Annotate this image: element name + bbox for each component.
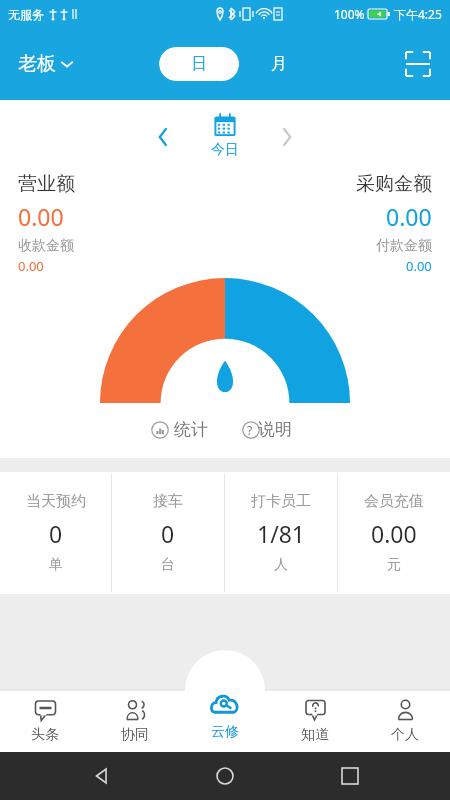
button[interactable]: 日 (159, 47, 239, 81)
button[interactable]: 打卡员工 (225, 472, 337, 594)
staticText: 个人 (391, 726, 419, 744)
staticText: 0 (49, 518, 63, 549)
button[interactable]: ? (236, 415, 306, 444)
staticText: 统计 (174, 419, 208, 440)
staticText: 采购金额 (356, 172, 432, 196)
staticText: 知道 (301, 726, 329, 744)
button[interactable]: 扫一扫 (400, 46, 436, 82)
staticText: 付款金额 (376, 237, 432, 255)
staticText: 日 (191, 54, 207, 74)
staticText: 元 (387, 556, 401, 574)
button[interactable]: 个人 (360, 690, 450, 752)
staticText: 打卡员工 (251, 492, 311, 511)
staticText: 当天预约 (26, 492, 86, 511)
staticText: 0.00 (18, 201, 64, 232)
staticText: 收款金额 (18, 237, 74, 255)
button[interactable]: 今日 (205, 114, 245, 159)
staticText: 单 (49, 556, 63, 574)
button[interactable]: 返回 (77, 752, 125, 800)
staticText: 0.00 (386, 201, 432, 232)
staticText: 0 (161, 518, 175, 549)
staticText: 100% (334, 6, 365, 22)
staticText: ? (247, 422, 253, 438)
button[interactable]: 统计 (145, 415, 214, 444)
staticText: 头条 (31, 726, 59, 744)
staticText: 无服务 (8, 7, 44, 22)
staticText: 台 (161, 556, 175, 574)
button[interactable]: 头条 (0, 690, 90, 752)
staticText: 接车 (153, 492, 183, 511)
staticText: 0.00 (406, 257, 432, 275)
staticText: 人 (274, 556, 288, 574)
staticText: 下午4:25 (394, 6, 442, 22)
staticText: 协同 (121, 726, 149, 744)
staticText: 会员充值 (364, 492, 424, 511)
button[interactable]: 知道 (270, 690, 360, 752)
staticText: 月 (271, 54, 287, 74)
staticText: 今日 (211, 141, 239, 159)
staticText: 1/81 (257, 518, 306, 549)
button[interactable]: 下一天 (265, 115, 309, 159)
button[interactable]: 协同 (90, 690, 180, 752)
button[interactable]: 老板 (14, 48, 78, 80)
staticText: 说明 (258, 419, 292, 440)
button[interactable]: 上一天 (141, 115, 185, 159)
button[interactable]: 接车 (112, 472, 224, 594)
staticText: 0.00 (371, 518, 417, 549)
button[interactable]: 主页 (201, 752, 249, 800)
staticText: 老板 (18, 52, 56, 76)
button[interactable]: 云修 (180, 690, 270, 752)
staticText: 营业额 (18, 172, 75, 196)
button[interactable]: 会员充值 (338, 472, 450, 594)
button[interactable]: 月 (239, 47, 319, 81)
button[interactable]: 当天预约 (0, 472, 111, 594)
button[interactable]: 最近任务 (326, 752, 374, 800)
staticText: 0.00 (18, 257, 44, 275)
staticText: 云修 (211, 723, 239, 741)
